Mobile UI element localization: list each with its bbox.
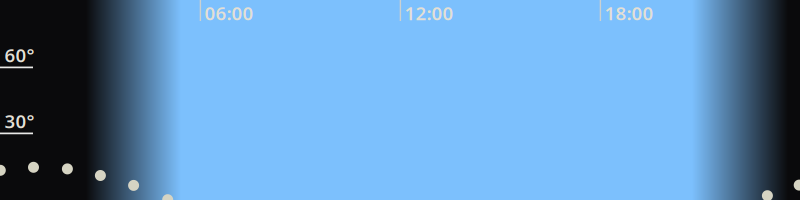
staticText: 12:00 bbox=[404, 1, 453, 25]
staticText: 18:00 bbox=[604, 1, 653, 25]
staticText: 06:00 bbox=[204, 1, 253, 25]
staticText: 60° bbox=[4, 43, 34, 67]
staticText: 30° bbox=[4, 109, 34, 133]
